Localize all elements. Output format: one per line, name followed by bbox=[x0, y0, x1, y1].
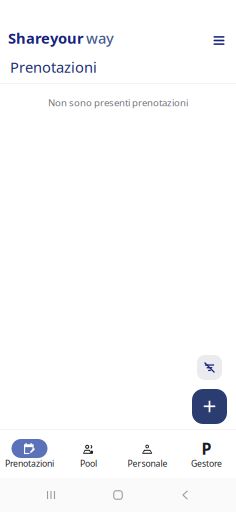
button[interactable]: Prenotazioni bbox=[0, 430, 59, 478]
staticText: Gestore bbox=[191, 458, 222, 469]
button[interactable]: Aggiungi prenotazione bbox=[192, 389, 227, 424]
button[interactable]: Menu bbox=[206, 24, 232, 51]
staticText: Personale bbox=[127, 458, 167, 469]
staticText: way bbox=[86, 28, 114, 48]
button[interactable]: Home bbox=[91, 478, 145, 512]
button[interactable]: Rimuovi filtri bbox=[197, 355, 222, 380]
staticText: Non sono presenti prenotazioni bbox=[48, 96, 188, 109]
staticText: Prenotazioni bbox=[5, 458, 54, 469]
button[interactable]: P bbox=[177, 430, 236, 478]
staticText: Share bbox=[8, 28, 50, 48]
button[interactable]: Pool bbox=[59, 430, 118, 478]
button[interactable]: Recenti bbox=[24, 478, 78, 512]
staticText: Prenotazioni bbox=[10, 57, 97, 77]
staticText: Pool bbox=[80, 458, 97, 469]
button[interactable]: Indietro bbox=[158, 478, 212, 512]
button[interactable]: Personale bbox=[118, 430, 177, 478]
staticText: your bbox=[50, 28, 84, 48]
staticText: P bbox=[201, 438, 211, 459]
